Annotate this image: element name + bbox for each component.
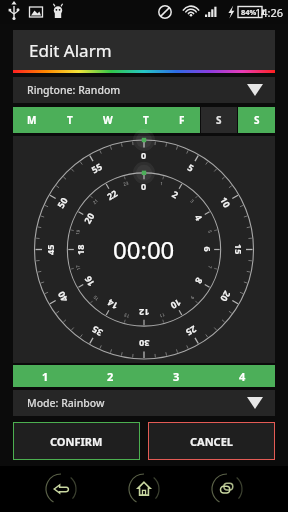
staticText: 84%	[241, 7, 257, 17]
button[interactable]: Mode: Rainbow	[13, 390, 275, 416]
staticText: 14:26	[255, 5, 284, 20]
staticText: S	[216, 113, 222, 127]
staticText: 3	[173, 369, 180, 384]
button[interactable]: Back	[39, 467, 83, 511]
button[interactable]: Time picker dial	[13, 136, 275, 363]
staticText: 2	[107, 369, 114, 384]
staticText: CANCEL	[190, 434, 233, 449]
button[interactable]: T	[127, 107, 164, 133]
button[interactable]: S	[238, 107, 275, 133]
staticText: S	[254, 113, 260, 127]
button[interactable]: Ringtone: Random	[13, 77, 275, 103]
button[interactable]: CANCEL	[148, 422, 275, 460]
button[interactable]: Recent apps	[205, 467, 249, 511]
button[interactable]: 2	[78, 365, 143, 387]
button[interactable]: W	[89, 107, 127, 133]
staticText: T	[143, 113, 149, 127]
staticText: M	[27, 113, 37, 127]
button[interactable]: 4	[209, 365, 275, 387]
staticText: 4	[239, 369, 246, 384]
staticText: Mode: Rainbow	[27, 396, 105, 410]
button[interactable]: Home	[122, 467, 166, 511]
button[interactable]: CONFIRM	[13, 422, 140, 460]
staticText: T	[67, 113, 73, 127]
button[interactable]: F	[164, 107, 200, 133]
button[interactable]: T	[51, 107, 89, 133]
staticText: CONFIRM	[50, 434, 103, 449]
staticText: Edit Alarm	[29, 39, 112, 62]
button[interactable]: 1	[13, 365, 78, 387]
button[interactable]: 3	[143, 365, 209, 387]
button[interactable]: M	[13, 107, 51, 133]
button[interactable]: S	[201, 107, 237, 133]
staticText: 1	[42, 369, 49, 384]
staticText: Ringtone: Random	[27, 83, 121, 97]
staticText: W	[103, 113, 113, 127]
staticText: F	[179, 113, 185, 127]
